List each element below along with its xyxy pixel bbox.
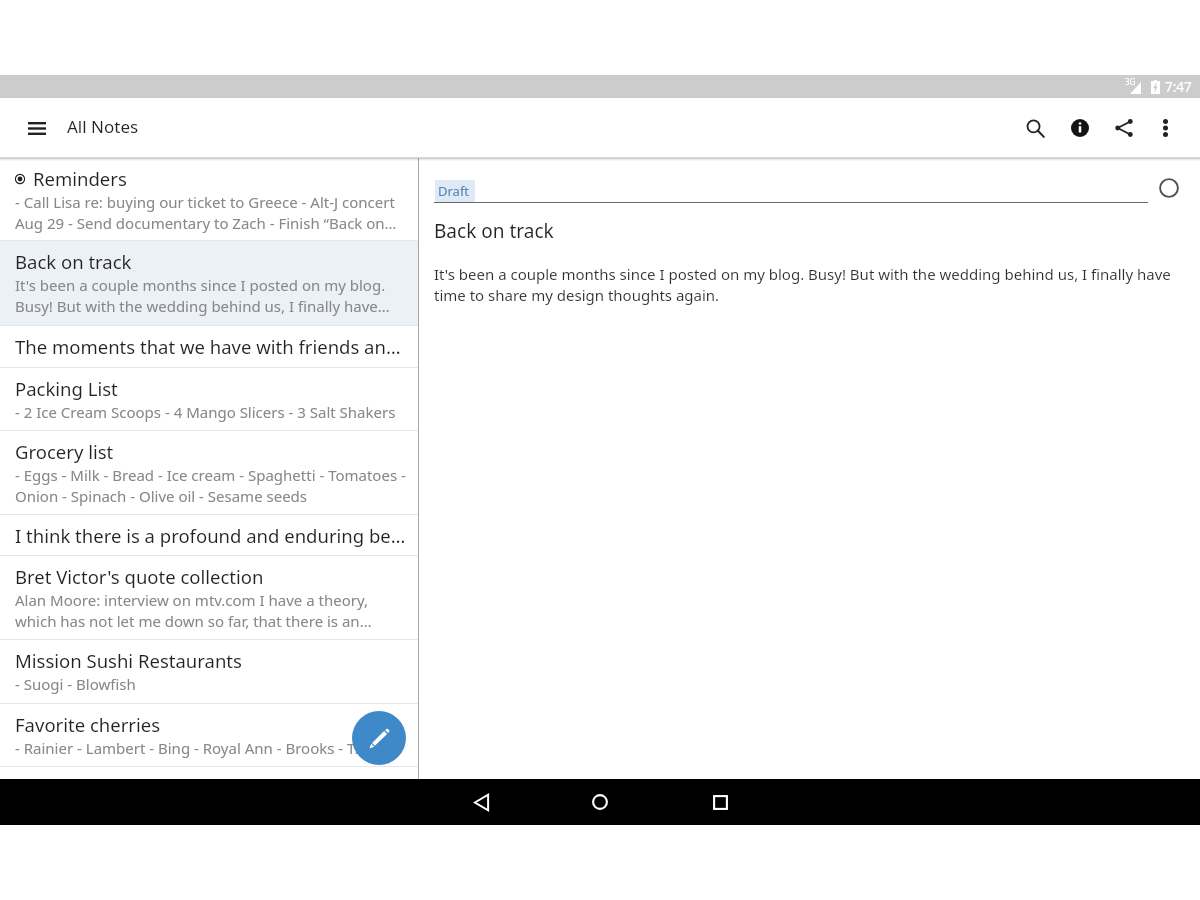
staticText: Draft bbox=[438, 182, 470, 200]
staticText: Mission Sushi Restaurants bbox=[15, 648, 242, 673]
button[interactable]: Favorite cherries bbox=[0, 704, 418, 766]
button[interactable]: Draft bbox=[435, 180, 475, 202]
button[interactable]: Back bbox=[456, 779, 506, 825]
staticText: It's been a couple months since I posted… bbox=[434, 264, 1179, 306]
staticText: All Notes bbox=[67, 115, 139, 138]
button[interactable]: Note information bbox=[1056, 104, 1104, 152]
staticText: 7:47 bbox=[1165, 78, 1192, 96]
staticText: Alan Moore: interview on mtv.com I have … bbox=[15, 590, 406, 632]
staticText: - Suogi - Blowfish bbox=[15, 674, 136, 694]
staticText: Bret Victor's quote collection bbox=[15, 564, 264, 589]
staticText: - Eggs - Milk - Bread - Ice cream - Spag… bbox=[15, 465, 406, 507]
button[interactable]: Packing List bbox=[0, 368, 418, 430]
button[interactable]: Mission Sushi Restaurants bbox=[0, 640, 418, 703]
staticText: - 2 Ice Cream Scoops - 4 Mango Slicers -… bbox=[15, 402, 396, 422]
button[interactable]: Open navigation menu bbox=[9, 100, 65, 156]
staticText: - Rainier - Lambert - Bing - Royal Ann -… bbox=[15, 738, 367, 758]
button[interactable]: Search bbox=[1011, 104, 1059, 152]
staticText: Back on track bbox=[15, 249, 132, 274]
button[interactable]: Bret Victor's quote collection bbox=[0, 556, 418, 639]
button[interactable]: Note status bbox=[1155, 174, 1183, 202]
button[interactable]: Share bbox=[1100, 104, 1148, 152]
button[interactable]: Grocery list bbox=[0, 431, 418, 514]
staticText: Favorite cherries bbox=[15, 712, 161, 737]
staticText: The moments that we have with friends an… bbox=[15, 334, 401, 359]
button[interactable]: Home bbox=[575, 779, 625, 825]
button[interactable]: Create new note bbox=[352, 711, 406, 765]
button[interactable]: The moments that we have with friends an… bbox=[0, 326, 418, 367]
staticText: Grocery list bbox=[15, 439, 114, 464]
button[interactable]: I think there is a profound and enduring… bbox=[0, 515, 418, 555]
staticText: Packing List bbox=[15, 376, 118, 401]
button[interactable]: Reminders bbox=[0, 158, 418, 240]
staticText: Back on track bbox=[434, 218, 554, 244]
button[interactable]: Recent apps bbox=[695, 779, 745, 825]
button[interactable]: Back on track bbox=[0, 241, 418, 325]
staticText: I think there is a profound and enduring… bbox=[15, 523, 406, 548]
staticText: Reminders bbox=[33, 166, 127, 191]
staticText: - Call Lisa re: buying our ticket to Gre… bbox=[15, 192, 406, 234]
staticText: It's been a couple months since I posted… bbox=[15, 275, 406, 317]
button[interactable]: More options bbox=[1141, 104, 1189, 152]
staticText: 3G bbox=[1125, 76, 1136, 87]
